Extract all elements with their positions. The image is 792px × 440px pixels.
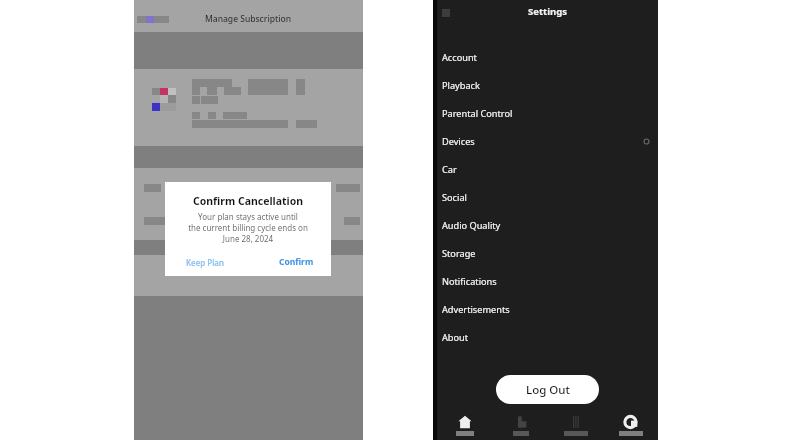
button[interactable]: Parental Control: [437, 99, 658, 127]
staticText: Advertisements: [442, 303, 510, 316]
staticText: Your plan stays active until the current…: [169, 211, 327, 244]
staticText: Confirm: [279, 256, 314, 268]
button[interactable]: Storage: [437, 239, 658, 267]
button[interactable]: Account: [437, 43, 658, 71]
staticText: Notifications: [442, 275, 497, 288]
button[interactable]: Devices: [437, 127, 658, 155]
button[interactable]: Car: [437, 155, 658, 183]
staticText: Settings: [528, 5, 567, 18]
button[interactable]: Keep Plan: [186, 257, 224, 268]
button[interactable]: Library: [548, 410, 603, 440]
staticText: About: [442, 331, 469, 344]
staticText: Manage Subscription: [205, 13, 292, 25]
button[interactable]: Advertisements: [437, 295, 658, 323]
staticText: Car: [442, 163, 457, 176]
button[interactable]: Home: [437, 410, 493, 440]
staticText: Social: [442, 191, 467, 204]
button[interactable]: Notifications: [437, 267, 658, 295]
button[interactable]: [134, 69, 363, 145]
staticText: Parental Control: [442, 107, 513, 120]
button[interactable]: Log Out: [496, 375, 599, 404]
staticText: Account: [442, 51, 477, 64]
button[interactable]: Back: [137, 16, 169, 23]
staticText: Storage: [442, 247, 476, 260]
button[interactable]: Playback: [437, 71, 658, 99]
button[interactable]: Audio Quality: [437, 211, 658, 239]
staticText: Devices: [442, 135, 475, 148]
staticText: Playback: [442, 79, 480, 92]
button[interactable]: Confirm: [279, 256, 314, 268]
staticText: Keep Plan: [186, 257, 224, 268]
staticText: Audio Quality: [442, 219, 501, 232]
staticText: Confirm Cancellation: [165, 194, 331, 208]
button[interactable]: About: [437, 323, 658, 351]
button[interactable]: Settings: [603, 410, 658, 440]
staticText: Log Out: [526, 382, 570, 398]
button[interactable]: [134, 217, 363, 225]
button[interactable]: [134, 184, 363, 192]
button[interactable]: Social: [437, 183, 658, 211]
button[interactable]: Search: [493, 410, 548, 440]
